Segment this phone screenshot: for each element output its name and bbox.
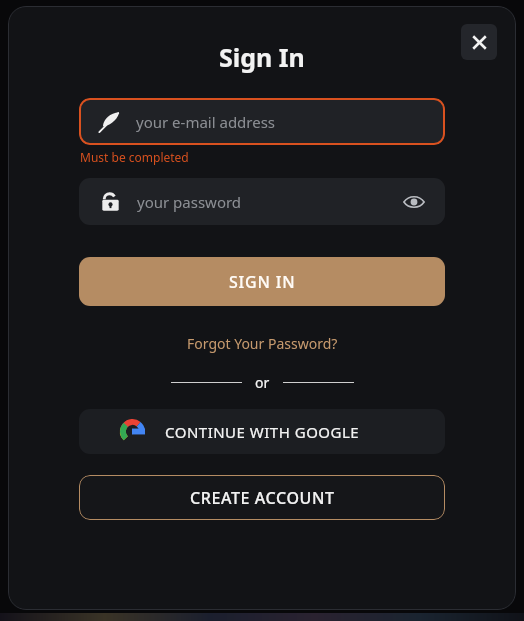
staticText: Forgot Your Password? xyxy=(187,334,338,353)
button[interactable]: your password xyxy=(79,178,445,225)
staticText: SIGN IN xyxy=(229,271,296,293)
button[interactable]: CREATE ACCOUNT xyxy=(79,475,445,520)
staticText: Must be completed xyxy=(80,149,189,165)
staticText: your e-mail address xyxy=(136,112,276,132)
button[interactable]: your e-mail address xyxy=(79,98,445,145)
staticText: or xyxy=(255,373,270,392)
button[interactable]: Close xyxy=(461,24,497,60)
button[interactable]: SIGN IN xyxy=(79,257,445,306)
staticText: Sign In xyxy=(219,40,305,74)
button[interactable]: CONTINUE WITH GOOGLE xyxy=(79,409,445,454)
staticText: your password xyxy=(137,192,401,212)
staticText: CREATE ACCOUNT xyxy=(190,487,335,509)
button[interactable]: Show password xyxy=(401,189,427,215)
button[interactable]: Forgot Your Password? xyxy=(183,332,342,355)
staticText: CONTINUE WITH GOOGLE xyxy=(165,422,360,442)
